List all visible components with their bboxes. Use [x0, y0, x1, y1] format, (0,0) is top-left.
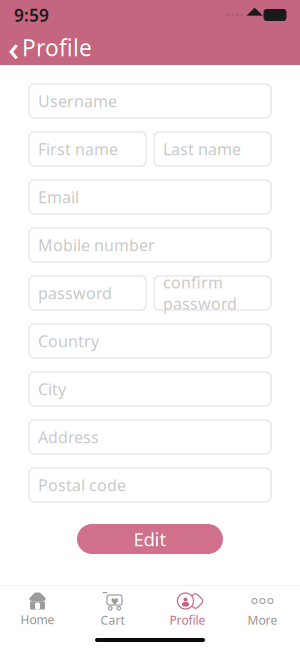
button[interactable]: ‹: [0, 20, 92, 74]
staticText: Country: [38, 330, 99, 352]
button[interactable]: More: [225, 586, 300, 632]
button[interactable]: ♥: [75, 586, 150, 632]
button[interactable]: Email: [29, 180, 271, 214]
button[interactable]: password: [29, 276, 146, 310]
button[interactable]: Mobile number: [29, 228, 271, 262]
button[interactable]: Last name: [154, 132, 271, 166]
button[interactable]: confirm password: [154, 276, 271, 310]
button[interactable]: Profile: [150, 586, 225, 632]
staticText: More: [247, 612, 277, 628]
button[interactable]: Username: [29, 84, 271, 118]
staticText: City: [38, 378, 66, 400]
staticText: First name: [38, 138, 118, 160]
staticText: Home: [20, 611, 54, 627]
staticText: ♥: [110, 596, 118, 607]
button[interactable]: Address: [29, 420, 271, 454]
staticText: confirm password: [163, 272, 237, 314]
staticText: Profile: [169, 612, 205, 628]
button[interactable]: Country: [29, 324, 271, 358]
staticText: 9:59: [14, 3, 49, 26]
staticText: Mobile number: [38, 234, 155, 256]
button[interactable]: Postal code: [29, 468, 271, 502]
staticText: Cart: [100, 612, 124, 628]
staticText: Username: [38, 90, 117, 112]
staticText: Postal code: [38, 474, 126, 496]
staticText: ◥: [248, 7, 259, 23]
button[interactable]: Home: [0, 586, 75, 631]
button[interactable]: First name: [29, 132, 146, 166]
button[interactable]: City: [29, 372, 271, 406]
staticText: password: [38, 282, 112, 304]
button[interactable]: Edit: [77, 524, 223, 554]
staticText: ‹: [8, 24, 19, 70]
staticText: Profile: [22, 32, 92, 62]
staticText: Email: [38, 186, 79, 208]
staticText: Edit: [133, 527, 166, 551]
staticText: Last name: [163, 138, 241, 160]
staticText: Address: [38, 426, 99, 448]
